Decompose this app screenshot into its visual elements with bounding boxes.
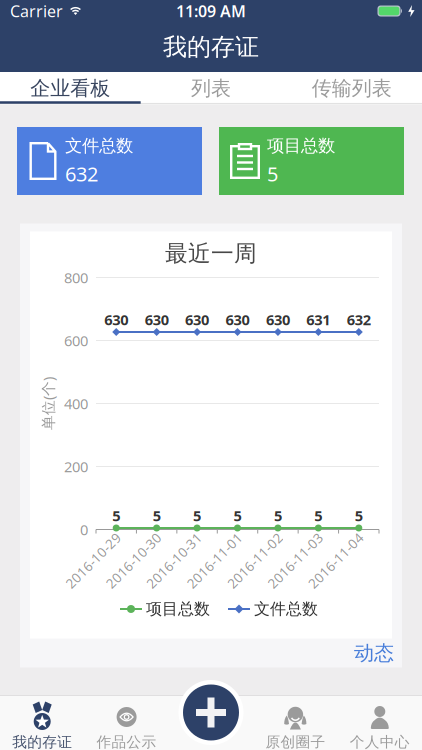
staticText: 5 [314, 506, 322, 525]
button[interactable]: 动态 [354, 641, 402, 665]
button[interactable]: 个人中心 [338, 695, 422, 750]
staticText: 2016-10-31 [138, 552, 210, 569]
staticText: 5 [233, 506, 241, 525]
staticText: 632 [65, 160, 98, 187]
staticText: 我的存证 [12, 733, 72, 750]
staticText: Carrier [10, 0, 63, 22]
staticText: 2016-11-03 [259, 552, 331, 569]
staticText: 400 [64, 394, 88, 413]
button[interactable]: 企业看板 [0, 73, 141, 104]
button[interactable]: 列表 [141, 73, 281, 104]
staticText: 传输列表 [312, 76, 392, 101]
staticText: 2016-11-04 [300, 552, 372, 569]
staticText: 632 [347, 310, 371, 329]
staticText: 5 [274, 506, 282, 525]
staticText: 企业看板 [30, 76, 110, 101]
staticText: 630 [185, 310, 209, 329]
staticText: 630 [104, 310, 128, 329]
staticText: 2016-10-29 [57, 552, 129, 569]
staticText: 列表 [191, 76, 231, 101]
staticText: 5 [193, 506, 201, 525]
staticText: 800 [64, 268, 88, 287]
staticText: 2016-11-01 [178, 552, 250, 569]
staticText: 5 [267, 160, 278, 187]
staticText: 200 [64, 457, 88, 476]
staticText: 11:09 AM [176, 0, 246, 22]
staticText: 630 [225, 310, 249, 329]
staticText: 个人中心 [350, 733, 410, 750]
staticText: 630 [266, 310, 290, 329]
staticText: 5 [112, 506, 120, 525]
staticText: 文件总数 [254, 599, 318, 619]
staticText: 文件总数 [65, 135, 133, 156]
staticText: 单位(个) [21, 394, 74, 413]
staticText: 项目总数 [146, 599, 210, 619]
staticText: 2016-11-02 [219, 552, 291, 569]
staticText: 2016-10-30 [98, 552, 170, 569]
button[interactable]: 文件总数 [17, 127, 202, 195]
staticText: 我的存证 [163, 32, 259, 62]
staticText: 600 [64, 331, 88, 350]
button[interactable]: 我的存证 [0, 695, 84, 750]
staticText: 原创圈子 [265, 733, 325, 750]
button[interactable]: 作品公示 [84, 695, 169, 750]
staticText: 631 [306, 310, 330, 329]
button[interactable]: 原创圈子 [253, 695, 338, 750]
staticText: 630 [145, 310, 169, 329]
staticText: 5 [153, 506, 161, 525]
button[interactable]: 新增存证 [178, 680, 243, 745]
staticText: 最近一周 [165, 240, 257, 267]
staticText: 作品公示 [97, 733, 157, 750]
staticText: 动态 [354, 641, 394, 665]
staticText: 项目总数 [267, 135, 335, 156]
staticText: 0 [80, 520, 88, 539]
staticText: 5 [355, 506, 363, 525]
button[interactable]: 传输列表 [281, 73, 422, 104]
button[interactable]: 项目总数 [219, 127, 404, 195]
